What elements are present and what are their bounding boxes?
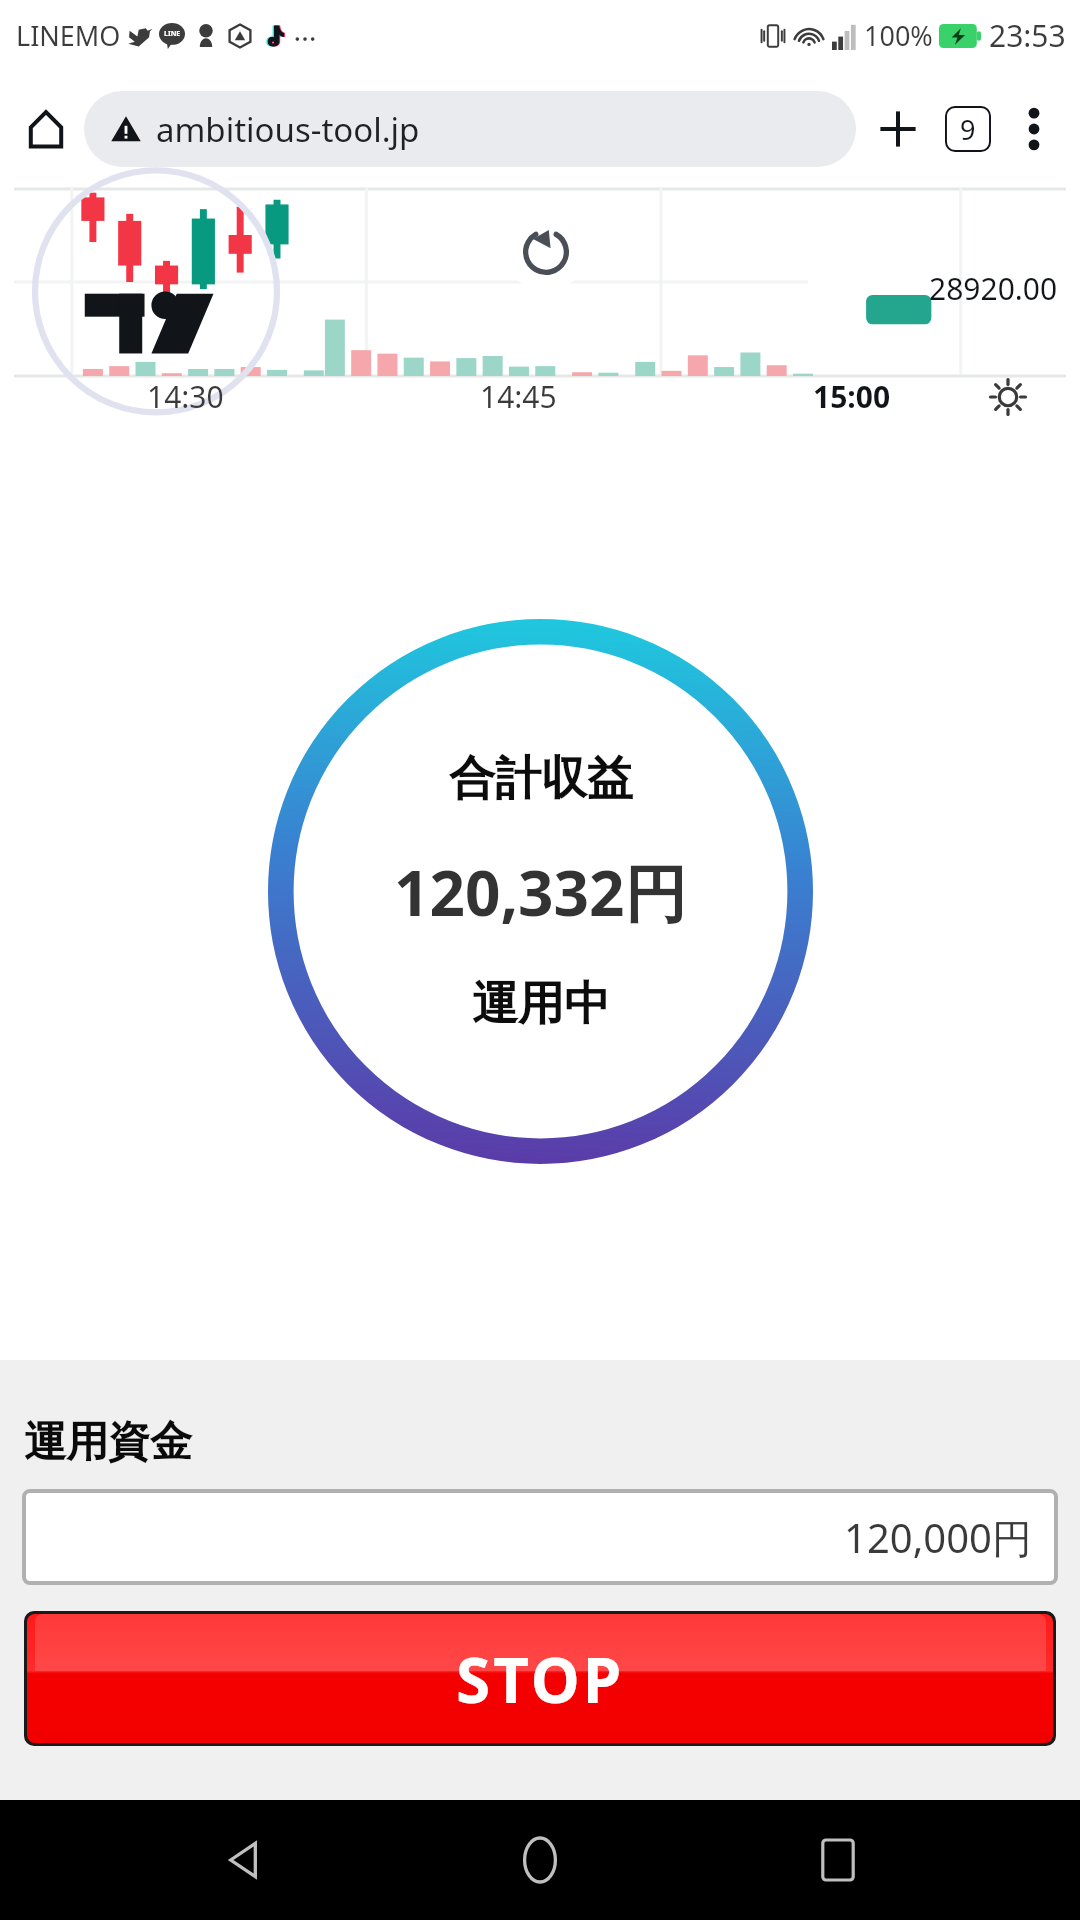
staticText: 23:53 xyxy=(989,15,1066,56)
staticText: 15:00 xyxy=(813,376,891,417)
staticText: 運用資金 xyxy=(24,1416,192,1469)
staticText: LINE xyxy=(164,29,181,39)
staticText: 120,332円 xyxy=(394,850,687,935)
staticText: 合計収益 xyxy=(449,750,633,808)
button[interactable]: More options xyxy=(1006,101,1062,157)
button[interactable]: Reset chart xyxy=(506,212,586,292)
staticText: 14:45 xyxy=(480,376,557,417)
staticText: 14:30 xyxy=(147,376,224,417)
button[interactable]: STOP xyxy=(27,1614,1053,1743)
staticText: STOP xyxy=(456,1637,625,1721)
staticText: ambitious-tool.jp xyxy=(156,107,420,152)
button[interactable]: Home xyxy=(18,101,74,157)
button[interactable]: Tabs, 9 open xyxy=(938,99,998,159)
staticText: 28920.00 xyxy=(929,268,1058,309)
staticText: 9 xyxy=(960,111,976,148)
staticText: 100% xyxy=(864,17,933,54)
staticText: 運用中 xyxy=(472,975,610,1033)
button[interactable]: ambitious-tool.jp xyxy=(84,91,856,167)
staticText: 120,000円 xyxy=(844,1510,1032,1565)
button[interactable]: Home xyxy=(485,1805,595,1915)
button[interactable]: Back xyxy=(188,1805,298,1915)
staticText: LINEMO xyxy=(16,17,121,54)
button[interactable]: Recent apps xyxy=(783,1805,893,1915)
button[interactable]: 120,000円 xyxy=(24,1491,1056,1583)
button[interactable]: New tab xyxy=(868,99,928,159)
